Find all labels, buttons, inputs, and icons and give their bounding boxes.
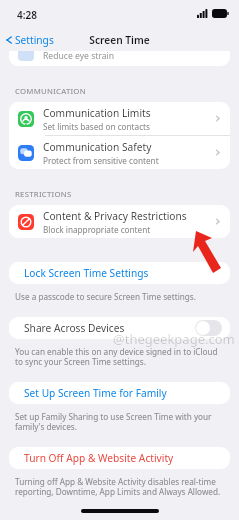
staticText: Communication Safety [43, 140, 152, 154]
button[interactable]: Communication Limits [9, 102, 230, 136]
staticText: 4:28 [17, 8, 37, 22]
staticText: RESTRICTIONS [15, 189, 72, 200]
button[interactable]: Lock Screen Time Settings [9, 262, 230, 284]
staticText: Turning off App & Website Activity disab… [15, 476, 227, 498]
button[interactable]: Set Up Screen Time for Family [9, 382, 230, 404]
button[interactable]: Share Across Devices toggle, off [195, 320, 222, 336]
staticText: Communication Limits [43, 106, 151, 120]
staticText: Lock Screen Time Settings [24, 266, 149, 280]
button[interactable]: Turn Off App & Website Activity [9, 447, 230, 469]
staticText: Set up Family Sharing to use Screen Time… [15, 411, 227, 433]
staticText: Block inappropriate content [43, 224, 151, 235]
staticText: Turn Off App & Website Activity [24, 451, 174, 465]
button[interactable]: Communication Safety [9, 136, 230, 169]
staticText: Use a passcode to secure Screen Time set… [15, 291, 196, 302]
button[interactable]: Share Across Devices [24, 317, 222, 339]
staticText: You can enable this on any device signed… [15, 346, 227, 368]
staticText: Protect from sensitive content [43, 155, 159, 166]
staticText: Set Up Screen Time for Family [24, 386, 167, 400]
staticText: COMMUNICATION [15, 86, 86, 97]
button[interactable]: Settings [4, 33, 54, 47]
staticText: Set limits based on contacts [43, 121, 150, 132]
staticText: Screen Time [89, 33, 150, 47]
staticText: @thegeekpage.com [113, 330, 235, 348]
staticText: Settings [15, 33, 54, 47]
staticText: Reduce eye strain [43, 51, 115, 62]
staticText: Content & Privacy Restrictions [43, 209, 187, 223]
button[interactable]: Content & Privacy Restrictions [9, 205, 230, 238]
staticText: Share Across Devices [24, 321, 195, 335]
